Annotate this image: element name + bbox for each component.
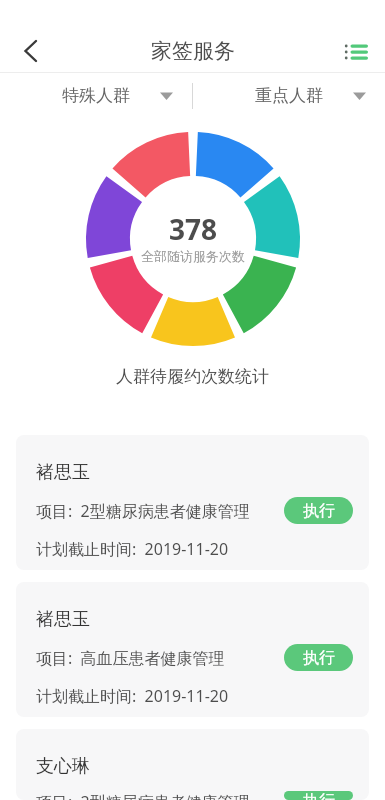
staticText: 褚思玉 [36, 461, 90, 484]
staticText: 执行 [303, 791, 335, 800]
button[interactable] [14, 35, 46, 67]
button[interactable]: 支心琳 [16, 729, 369, 800]
staticText: 执行 [303, 501, 335, 521]
staticText: 计划截止时间: 2019-11-20 [36, 685, 229, 707]
button[interactable] [341, 36, 371, 66]
button[interactable]: 褚思玉 [16, 582, 369, 717]
button[interactable]: 执行 [284, 791, 353, 800]
button[interactable]: 执行 [284, 497, 353, 524]
staticText: 特殊人群 [62, 85, 130, 106]
staticText: 378 [169, 210, 218, 248]
button[interactable]: 特殊人群 [0, 73, 192, 118]
staticText: 项目: 高血压患者健康管理 [36, 647, 225, 669]
staticText: 重点人群 [255, 85, 323, 106]
button[interactable]: 执行 [284, 644, 353, 671]
staticText: 褚思玉 [36, 608, 90, 631]
button[interactable]: 重点人群 [193, 73, 385, 118]
staticText: 执行 [303, 648, 335, 668]
staticText: 家签服务 [151, 38, 235, 64]
staticText: 全部随访服务次数 [141, 248, 245, 264]
button[interactable]: 褚思玉 [16, 435, 369, 570]
staticText: 计划截止时间: 2019-11-20 [36, 538, 229, 560]
staticText: 人群待履约次数统计 [0, 366, 385, 387]
staticText: 项目: 2型糖尿病患者健康管理 [36, 500, 250, 522]
staticText: 项目: 2型糖尿病患者健康管理 [36, 791, 250, 800]
staticText: 支心琳 [36, 755, 90, 778]
